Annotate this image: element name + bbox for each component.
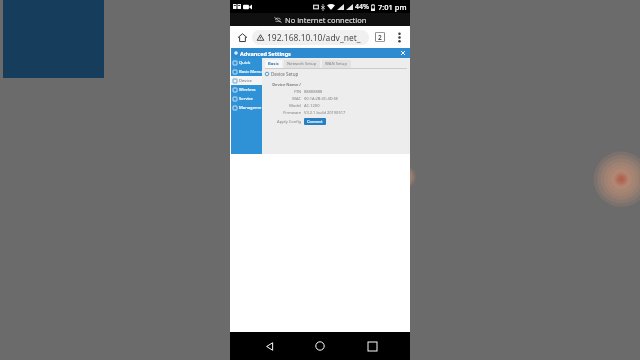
staticText: 192.168.10.10/adv_net_ <box>267 32 361 44</box>
staticText: Quick Setup <box>239 60 262 66</box>
staticText: Service <box>239 96 253 102</box>
staticText: No internet connection <box>285 15 367 25</box>
button[interactable]: Device Setup <box>231 76 262 85</box>
staticText: Firmware <box>265 110 301 115</box>
button[interactable]: Close <box>399 49 407 57</box>
staticText: Network Setup <box>287 61 317 67</box>
staticText: WAN Setup <box>325 61 348 67</box>
staticText: Connect <box>307 119 323 124</box>
button[interactable]: Back <box>256 333 282 359</box>
button[interactable]: More options <box>391 29 407 45</box>
staticText: Wireless <box>239 87 256 93</box>
staticText: V3.2.1 build 20190517 <box>304 110 346 115</box>
staticText: 2 <box>378 33 382 42</box>
staticText: Basic <box>268 61 279 67</box>
staticText: MAC <box>265 96 301 101</box>
staticText: 88888888 <box>304 89 323 94</box>
button[interactable]: Wireless <box>231 85 262 94</box>
button[interactable]: Service <box>231 94 262 103</box>
button[interactable]: Network Setup <box>284 60 320 68</box>
button[interactable]: Connect <box>304 118 326 125</box>
staticText: Device Setup <box>271 71 299 77</box>
staticText: Management <box>239 105 262 111</box>
button[interactable]: Home <box>307 333 333 359</box>
staticText: Apply Config <box>265 119 301 124</box>
staticText: Device Setup <box>239 78 262 84</box>
staticText: 7:01 pm <box>378 2 407 12</box>
button[interactable]: 192.168.10.10/adv_net_ <box>252 30 369 45</box>
staticText: 00:1A:2B:3C:4D:5E <box>304 96 339 101</box>
staticText: Advanced Settings <box>240 50 291 57</box>
button[interactable]: Basic Menu <box>231 67 262 76</box>
staticText: AC-1200 <box>304 103 320 108</box>
staticText: PIN <box>265 89 301 94</box>
button[interactable]: Basic <box>265 60 282 68</box>
button[interactable]: Quick Setup <box>231 58 262 67</box>
button[interactable]: Tabs: 2 <box>372 29 388 45</box>
staticText: Device Name / SSID <box>265 82 301 87</box>
button[interactable]: Home <box>234 29 250 45</box>
staticText: 44% <box>355 2 369 12</box>
staticText: Basic Menu <box>239 69 262 75</box>
staticText: Model <box>265 103 301 108</box>
button[interactable]: Recent apps <box>359 333 385 359</box>
button[interactable]: WAN Setup <box>322 60 351 68</box>
button[interactable]: Management <box>231 103 262 112</box>
button[interactable]: Advanced Settings <box>231 48 410 58</box>
